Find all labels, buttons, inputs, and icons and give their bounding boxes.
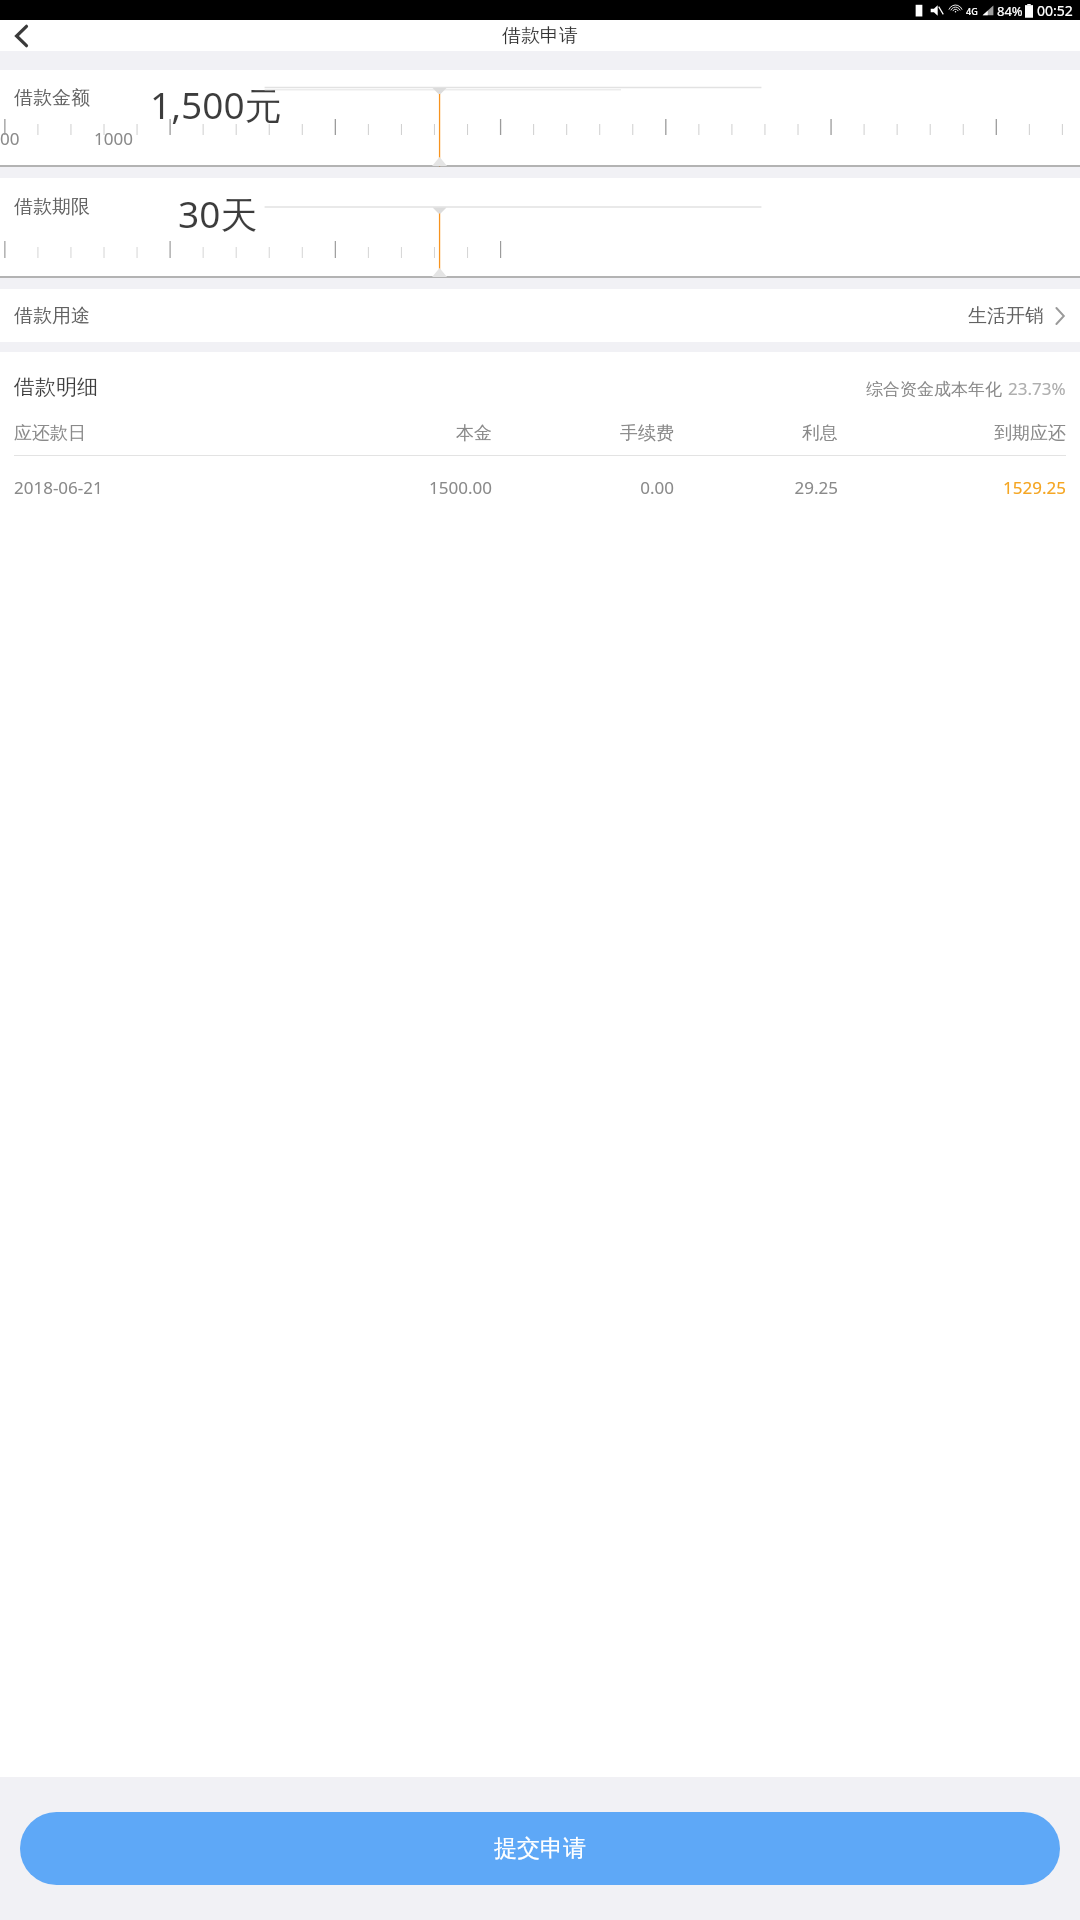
staticText: 本金 [298,422,492,445]
staticText: 23.73% [1008,377,1066,400]
staticText: 1529.25 [838,476,1066,499]
staticText: 1500.00 [298,476,492,499]
staticText: 生活开销 [968,304,1044,328]
button[interactable]: Back [6,20,38,51]
staticText: 借款明细 [14,374,98,400]
staticText: 到期应还 [838,422,1066,445]
staticText: 30天 [178,188,258,239]
staticText: 00:52 [1037,1,1073,20]
staticText: 手续费 [492,422,674,445]
staticText: 1,500元 [150,79,282,130]
staticText: 提交申请 [494,1834,586,1863]
staticText: 29.25 [674,476,838,499]
staticText: 借款申请 [502,24,578,48]
button[interactable]: 提交申请 [20,1812,1060,1885]
staticText: 0.00 [492,476,674,499]
staticText: 00 [0,127,20,150]
staticText: 4G [966,5,978,17]
staticText: 应还款日 [14,422,298,445]
staticText: 综合资金成本年化 [866,379,1002,400]
staticText: 借款用途 [14,304,90,328]
button[interactable]: 借款用途 [0,289,1080,342]
staticText: 借款期限 [14,195,90,219]
staticText: 84% [997,2,1023,20]
staticText: 2018-06-21 [14,476,298,499]
staticText: 1000 [94,127,133,150]
staticText: 借款金额 [14,86,90,110]
staticText: 利息 [674,422,838,445]
